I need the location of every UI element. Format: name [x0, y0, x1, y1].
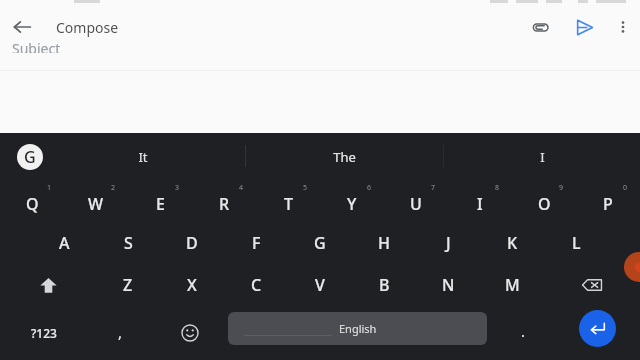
staticText: H [378, 232, 390, 254]
staticText: . [521, 321, 526, 341]
staticText: It [138, 148, 148, 166]
staticText: Q [26, 193, 39, 215]
button[interactable]: A [32, 222, 96, 264]
staticText: 6 [367, 183, 372, 193]
button[interactable]: K [480, 222, 544, 264]
button[interactable]: I [448, 180, 512, 222]
button[interactable]: H [352, 222, 416, 264]
button[interactable]: I [493, 133, 591, 180]
button[interactable]: G [288, 222, 352, 264]
staticText: The [333, 148, 356, 166]
staticText: Y [347, 193, 357, 215]
button[interactable]: . [495, 306, 551, 360]
button[interactable]: English [228, 312, 487, 345]
button[interactable]: Shift [0, 264, 96, 306]
staticText: K [507, 232, 518, 254]
button[interactable]: Enter [579, 310, 616, 347]
button[interactable]: W [64, 180, 128, 222]
staticText: , [118, 322, 123, 342]
button[interactable]: Attach file [518, 7, 562, 47]
button[interactable]: , [90, 306, 150, 360]
button[interactable]: The [295, 133, 393, 180]
staticText: G [24, 146, 36, 168]
button[interactable]: F [224, 222, 288, 264]
button[interactable]: V [288, 264, 352, 306]
button[interactable]: L [544, 222, 608, 264]
button[interactable]: J [416, 222, 480, 264]
button[interactable]: ?123 [4, 306, 84, 360]
staticText: Subject [12, 39, 61, 53]
staticText: M [505, 274, 520, 296]
staticText: English [339, 321, 377, 336]
staticText: J [446, 232, 451, 254]
button[interactable]: O [512, 180, 576, 222]
staticText: F [252, 232, 261, 254]
staticText: G [314, 232, 326, 254]
staticText: B [379, 274, 390, 296]
staticText: E [156, 193, 165, 215]
staticText: L [572, 232, 581, 254]
staticText: N [442, 274, 455, 296]
staticText: 0 [623, 183, 628, 193]
staticText: A [59, 232, 70, 254]
button[interactable]: M [480, 264, 544, 306]
staticText: Compose [56, 18, 119, 37]
staticText: D [186, 232, 198, 254]
button[interactable]: Back [0, 7, 44, 47]
button[interactable]: Y [320, 180, 384, 222]
staticText: 9 [559, 183, 564, 193]
button[interactable]: N [416, 264, 480, 306]
staticText: I [477, 193, 483, 215]
staticText: V [315, 274, 325, 296]
staticText: 2 [111, 183, 116, 193]
staticText: 8 [495, 183, 500, 193]
staticText: Z [123, 274, 133, 296]
staticText: T [284, 193, 293, 215]
staticText: U [410, 193, 422, 215]
button[interactable]: P [576, 180, 640, 222]
staticText: X [187, 274, 197, 296]
button[interactable]: Gboard menu [8, 133, 52, 180]
staticText: W [88, 193, 104, 215]
button[interactable]: R [192, 180, 256, 222]
button[interactable]: Z [96, 264, 160, 306]
staticText: O [538, 193, 551, 215]
button[interactable]: Q [0, 180, 64, 222]
button[interactable]: More options [606, 7, 640, 47]
staticText: P [603, 193, 613, 215]
staticText: I [540, 148, 545, 166]
staticText: C [251, 274, 262, 296]
button[interactable]: Subject [0, 47, 640, 61]
button[interactable]: C [224, 264, 288, 306]
button[interactable]: Send [562, 7, 606, 47]
staticText: R [219, 193, 230, 215]
staticText: ?123 [31, 325, 57, 341]
staticText: S [124, 232, 133, 254]
button[interactable]: E [128, 180, 192, 222]
staticText: 5 [303, 183, 308, 193]
button[interactable]: D [160, 222, 224, 264]
staticText: 1 [47, 183, 52, 193]
button[interactable]: B [352, 264, 416, 306]
button[interactable]: U [384, 180, 448, 222]
button[interactable]: Emoji [162, 306, 218, 360]
button[interactable]: X [160, 264, 224, 306]
button[interactable]: Backspace [544, 264, 640, 306]
button[interactable]: T [256, 180, 320, 222]
staticText: 7 [431, 183, 436, 193]
staticText: 4 [239, 183, 244, 193]
button[interactable]: It [94, 133, 192, 180]
button[interactable]: S [96, 222, 160, 264]
staticText: 3 [175, 183, 180, 193]
